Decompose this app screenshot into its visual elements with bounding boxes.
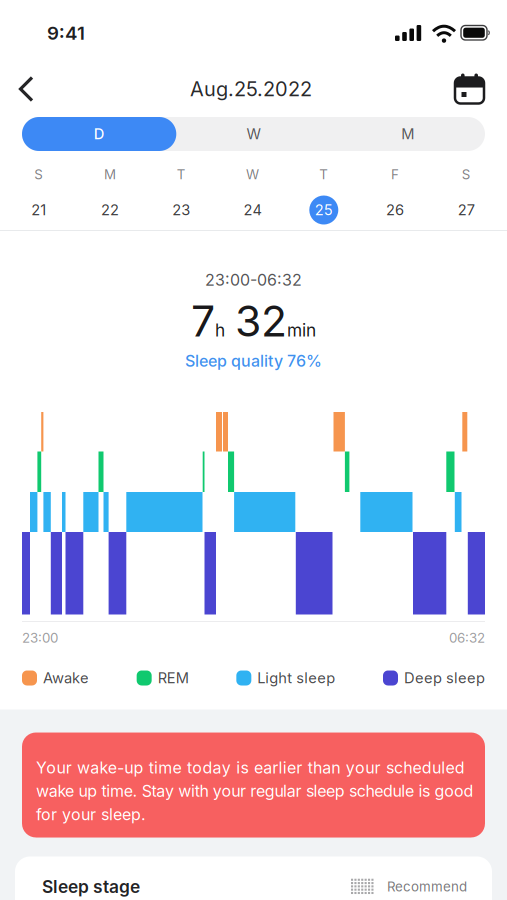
staticText: Sleep quality 76% [185, 352, 322, 370]
staticText: S [34, 167, 43, 182]
button[interactable]: Back [8, 72, 52, 105]
button[interactable]: 21 [3, 195, 74, 225]
staticText: 23 [172, 201, 190, 219]
staticText: 27 [458, 201, 475, 219]
button[interactable]: 25 [288, 195, 359, 225]
staticText: 25 [315, 201, 333, 219]
button[interactable]: 27 [431, 195, 502, 225]
staticText: 24 [243, 201, 261, 219]
staticText: Aug.25.2022 [190, 77, 312, 101]
button[interactable]: Calendar [450, 72, 494, 105]
staticText: S [462, 167, 471, 182]
staticText: REM [158, 669, 189, 687]
staticText: Recommend [387, 879, 467, 895]
staticText: Deep sleep [404, 669, 485, 687]
staticText: D [94, 125, 105, 143]
staticText: M [104, 167, 116, 182]
staticText: Your wake-up time today is earlier than … [36, 758, 465, 777]
button[interactable]: 23 [146, 195, 217, 225]
staticText: 23:00 [22, 630, 58, 646]
staticText: W [246, 167, 259, 182]
staticText: 22 [101, 201, 119, 219]
staticText: 9:41 [47, 22, 85, 44]
button[interactable]: 24 [217, 195, 288, 225]
staticText: W [246, 125, 260, 143]
button[interactable]: M [331, 117, 485, 151]
staticText: T [319, 167, 328, 182]
button[interactable]: 22 [74, 195, 146, 225]
staticText: F [391, 167, 399, 182]
staticText: M [401, 125, 414, 143]
staticText: Awake [43, 669, 89, 687]
staticText: wake up time. Stay with your regular sle… [36, 782, 474, 800]
button[interactable]: W [176, 117, 331, 151]
staticText: 06:32 [449, 630, 485, 646]
button[interactable]: 26 [359, 195, 431, 225]
staticText: 7h 32min [191, 296, 316, 346]
staticText: Sleep stage [42, 876, 140, 897]
button[interactable]: Recommend [351, 879, 467, 895]
staticText: 23:00-06:32 [205, 271, 302, 289]
staticText: Light sleep [257, 669, 335, 687]
staticText: T [177, 167, 186, 182]
button[interactable]: D [22, 117, 176, 151]
staticText: 21 [31, 201, 46, 219]
staticText: for your sleep. [36, 805, 146, 824]
staticText: 26 [386, 201, 404, 219]
